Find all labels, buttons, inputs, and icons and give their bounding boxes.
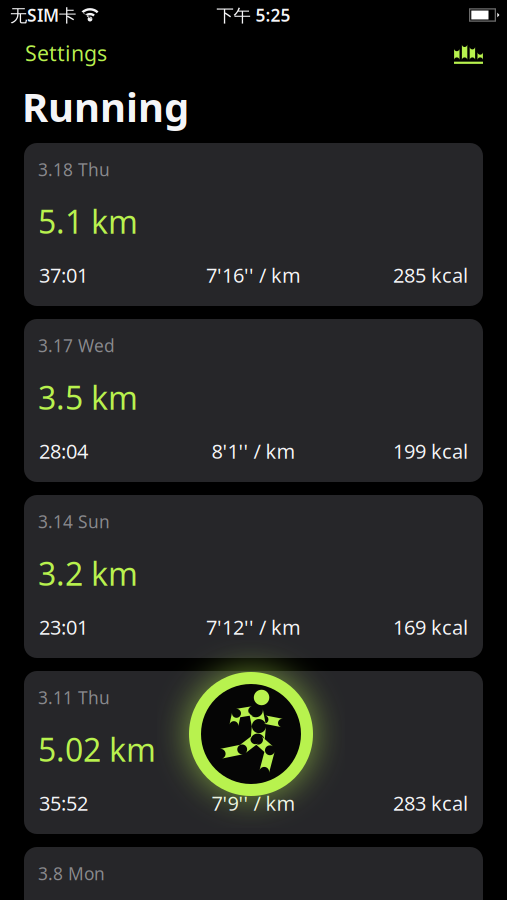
staticText: 199 kcal bbox=[393, 438, 468, 464]
staticText: 下午 5:25 bbox=[216, 3, 290, 26]
staticText: 3.14 Sun bbox=[38, 510, 110, 533]
staticText: Running bbox=[22, 80, 189, 133]
button[interactable]: Settings bbox=[25, 40, 107, 66]
button[interactable]: Statistics bbox=[454, 41, 483, 64]
staticText: 35:52 bbox=[39, 790, 88, 816]
staticText: 28:04 bbox=[39, 438, 88, 464]
staticText: 7'12'' / km bbox=[206, 614, 301, 640]
staticText: 3.18 Thu bbox=[38, 158, 110, 181]
button[interactable]: 3.18 Thu bbox=[24, 143, 483, 306]
staticText: 7'16'' / km bbox=[206, 262, 301, 288]
staticText: Settings bbox=[25, 39, 107, 67]
staticText: 8'1'' / km bbox=[211, 438, 295, 464]
staticText: 5.02 km bbox=[38, 728, 156, 770]
button[interactable]: 3.11 Thu bbox=[24, 671, 483, 834]
staticText: 3.11 Thu bbox=[38, 686, 110, 709]
staticText: 37:01 bbox=[39, 262, 88, 288]
staticText: 283 kcal bbox=[393, 790, 468, 816]
staticText: 7'9'' / km bbox=[211, 790, 295, 816]
staticText: 无SIM卡 bbox=[10, 3, 76, 26]
staticText: 3.8 Mon bbox=[38, 862, 105, 885]
button[interactable]: Start a run bbox=[151, 634, 351, 834]
staticText: 3.2 km bbox=[38, 552, 138, 594]
staticText: 285 kcal bbox=[393, 262, 468, 288]
button[interactable]: 3.8 Mon bbox=[24, 847, 483, 900]
button[interactable]: 3.17 Wed bbox=[24, 319, 483, 482]
button[interactable]: 3.14 Sun bbox=[24, 495, 483, 658]
staticText: 23:01 bbox=[39, 614, 88, 640]
staticText: 5.1 km bbox=[38, 200, 138, 242]
staticText: 169 kcal bbox=[393, 614, 468, 640]
staticText: 3.5 km bbox=[38, 376, 138, 418]
staticText: 3.17 Wed bbox=[38, 334, 115, 357]
